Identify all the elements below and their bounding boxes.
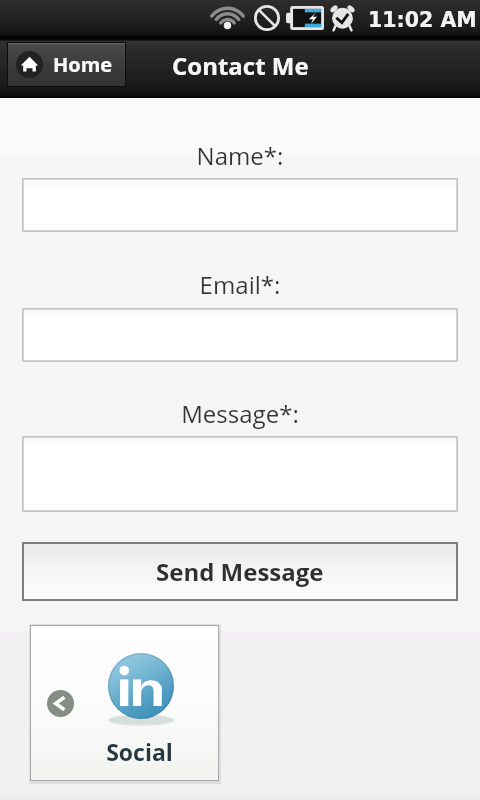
button[interactable]: Social: [31, 626, 218, 780]
staticText: Message*:: [0, 397, 480, 430]
button[interactable]: Send Message: [24, 544, 456, 599]
button[interactable]: Previous: [47, 690, 74, 717]
staticText: 11:02 AM: [368, 8, 477, 32]
staticText: Home: [53, 51, 113, 78]
staticText: Send Message: [156, 555, 324, 588]
staticText: Name*:: [0, 139, 480, 172]
staticText: Contact Me: [172, 49, 309, 82]
button[interactable]: Home: [8, 43, 125, 86]
staticText: Email*:: [0, 268, 480, 301]
staticText: Social: [46, 736, 233, 767]
